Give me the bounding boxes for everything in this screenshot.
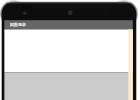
staticText: 関数電卓 xyxy=(10,22,26,27)
other: Front camera xyxy=(22,10,28,16)
button[interactable]: 関数電卓 xyxy=(4,20,132,29)
